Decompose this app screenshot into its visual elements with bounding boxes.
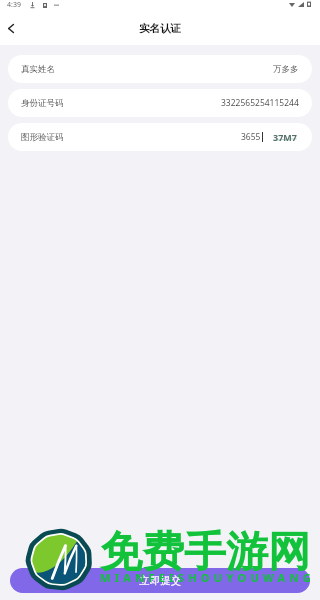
staticText: 免费手游网 [100,526,310,579]
button[interactable]: 立即提交 [10,568,310,593]
staticText: 万多多 [273,64,299,75]
button[interactable]: Back [0,13,26,43]
button[interactable]: Refresh captcha [271,130,298,144]
staticText: 3655 [241,131,261,143]
staticText: 立即提交 [139,574,181,587]
staticText: 3322565254115244 [221,97,299,109]
staticText: 实名认证 [139,22,181,35]
staticText: 37M7 [273,131,297,143]
staticText: MIANFEISHOUYOUWANG [100,570,315,585]
staticText: 图形验证码 [21,132,64,143]
staticText: 4:39 [7,0,21,10]
button[interactable]: 身份证号码 [8,89,312,117]
staticText: 身份证号码 [21,98,64,109]
button[interactable]: 真实姓名 [8,55,312,83]
button[interactable]: 图形验证码 [8,123,312,151]
staticText: 真实姓名 [21,64,55,75]
